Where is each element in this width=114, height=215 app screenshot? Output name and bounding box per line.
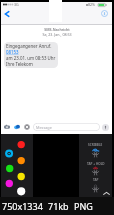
staticText: 82% [88,2,96,7]
staticText: 3G [14,2,19,7]
staticText: Eingegangener Anruf. [6,43,52,49]
staticText: Message [36,125,52,130]
staticText: Sa, 23. Jan., 08:53 [42,32,72,37]
button[interactable]: Back [1,8,12,19]
button[interactable]: Details [99,8,110,19]
staticText: 08153 [6,49,19,55]
button[interactable]: Message [33,123,100,131]
button[interactable]: Eingegangener Anruf. [4,42,58,68]
button[interactable]: Record audio [101,123,110,132]
staticText: SMS-Nachricht [44,27,70,32]
staticText: SCRIBBLE [88,143,103,147]
staticText: Ihre Telekom [6,61,33,67]
staticText: am 23.01. um 08:53 Uhr [6,55,56,61]
staticText: TAP + HOLD [87,162,105,166]
staticText: 750x1334 [2,200,43,212]
button[interactable]: SCRIBBLE [79,148,112,157]
button[interactable]: TAP [79,183,112,192]
staticText: 71kb [48,200,69,212]
button[interactable]: App Store [12,122,22,132]
button[interactable]: TAP + HOLD [79,166,112,175]
button[interactable]: Digital Touch [22,122,32,132]
button[interactable]: Expand [101,188,112,199]
staticText: TAP [93,178,99,182]
button[interactable]: Camera [2,122,12,132]
staticText: PNG [74,200,93,212]
